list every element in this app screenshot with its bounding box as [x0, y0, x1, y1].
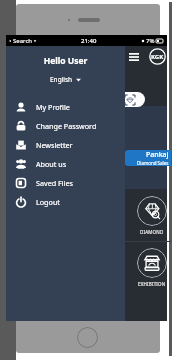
button[interactable]: KGK logo: [149, 48, 166, 65]
button[interactable]: Change Password: [6, 116, 125, 135]
button[interactable]: English: [6, 75, 125, 84]
staticText: Logout: [36, 197, 60, 207]
staticText: DIAMOND: [140, 229, 164, 235]
button[interactable]: EXHIBITION: [129, 245, 175, 293]
staticText: 7%: [146, 37, 155, 45]
staticText: Diamond Sales: [137, 160, 169, 166]
button[interactable]: Logout: [6, 192, 125, 211]
staticText: My Profile: [36, 102, 70, 112]
staticText: Newsletter: [36, 140, 73, 150]
staticText: Saved Files: [36, 178, 73, 188]
button[interactable]: Pankaj: [125, 150, 171, 166]
staticText: Hello User: [6, 55, 125, 67]
staticText: Change Password: [36, 121, 97, 131]
staticText: About us: [36, 159, 67, 169]
button[interactable]: Open navigation menu: [126, 51, 142, 63]
button[interactable]: My Profile: [6, 97, 125, 116]
button[interactable]: Newsletter: [6, 135, 125, 154]
button[interactable]: Saved Files: [6, 173, 125, 192]
staticText: Search: [13, 37, 32, 45]
staticText: English: [50, 75, 73, 84]
staticText: 21:40: [81, 37, 97, 45]
staticText: EXHIBITION: [138, 281, 166, 287]
staticText: Pankaj: [146, 150, 169, 160]
button[interactable]: DIAMOND: [129, 193, 175, 241]
button[interactable]: About us: [6, 154, 125, 173]
staticText: KGK: [151, 53, 164, 61]
